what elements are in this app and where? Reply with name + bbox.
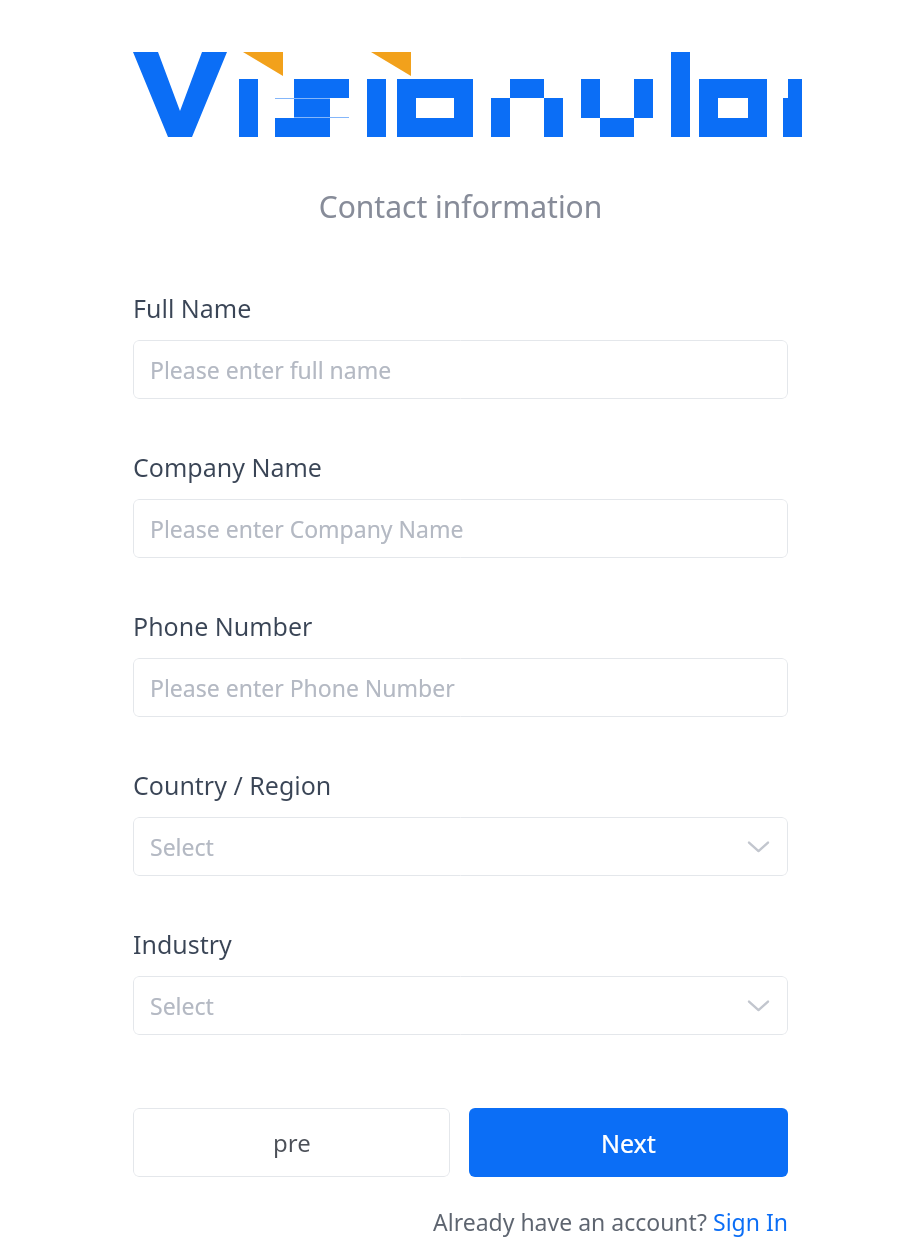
button[interactable]: Sign In bbox=[713, 1206, 788, 1237]
button[interactable]: Industry bbox=[133, 976, 788, 1035]
staticText: Full Name bbox=[133, 291, 252, 325]
staticText: pre bbox=[273, 1126, 311, 1159]
button[interactable]: Full Name bbox=[133, 340, 788, 399]
button[interactable]: Country / Region bbox=[133, 817, 788, 876]
staticText: Company Name bbox=[133, 450, 322, 484]
staticText: Sign In bbox=[713, 1206, 788, 1237]
button[interactable]: Company Name bbox=[133, 499, 788, 558]
staticText: Select bbox=[150, 831, 749, 862]
staticText: Please enter Phone Number bbox=[150, 672, 768, 703]
staticText: Please enter Company Name bbox=[150, 513, 768, 544]
staticText: Please enter full name bbox=[150, 354, 768, 385]
button[interactable]: Phone Number bbox=[133, 658, 788, 717]
staticText: Select bbox=[150, 990, 749, 1021]
button[interactable]: Next bbox=[469, 1108, 788, 1177]
staticText: Country / Region bbox=[133, 768, 332, 802]
staticText: Contact information bbox=[133, 186, 788, 227]
staticText: Next bbox=[601, 1126, 656, 1160]
staticText: Already have an account? bbox=[433, 1206, 713, 1237]
button[interactable]: pre bbox=[133, 1108, 450, 1177]
staticText: Phone Number bbox=[133, 609, 313, 643]
staticText: Industry bbox=[133, 927, 232, 961]
